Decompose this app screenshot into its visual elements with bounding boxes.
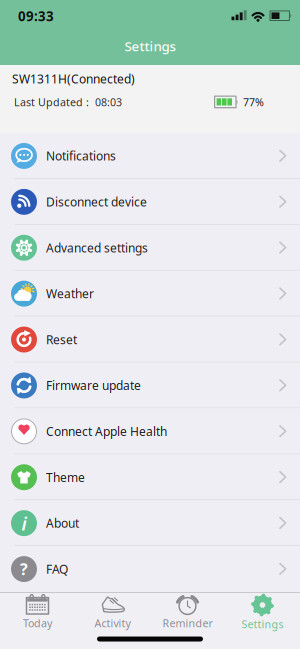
staticText: Reset	[46, 332, 77, 347]
staticText: About	[46, 515, 79, 531]
button[interactable]: Reminder	[150, 594, 225, 634]
button[interactable]: i	[0, 500, 300, 546]
staticText: Theme	[46, 469, 85, 485]
button[interactable]: Reset	[0, 317, 300, 362]
staticText: Firmware update	[46, 377, 141, 393]
staticText: Settings	[124, 37, 175, 55]
button[interactable]: Weather	[0, 271, 300, 317]
staticText: 77%	[243, 95, 264, 109]
staticText: 09:33	[18, 7, 54, 25]
button[interactable]: Notifications	[0, 133, 300, 179]
staticText: SW1311H(Connected)	[12, 71, 135, 87]
button[interactable]: Activity	[75, 594, 150, 634]
staticText: Activity	[94, 616, 130, 630]
staticText: Connect Apple Health	[46, 423, 167, 439]
button[interactable]: Advanced settings	[0, 225, 300, 271]
button[interactable]: Today	[0, 594, 75, 634]
staticText: Settings	[241, 617, 283, 631]
staticText: Today	[23, 616, 52, 630]
staticText: Last Updated : 08:03	[14, 95, 122, 109]
staticText: Weather	[46, 286, 94, 302]
staticText: Reminder	[162, 616, 212, 630]
button[interactable]: Settings	[225, 594, 300, 634]
button[interactable]: ?	[0, 546, 300, 592]
button[interactable]: Theme	[0, 454, 300, 500]
staticText: ?	[20, 558, 28, 580]
button[interactable]: Disconnect device	[0, 179, 300, 225]
button[interactable]: Connect Apple Health	[0, 408, 300, 454]
button[interactable]: Firmware update	[0, 362, 300, 408]
staticText: Notifications	[46, 148, 116, 164]
staticText: Disconnect device	[46, 194, 147, 210]
staticText: i	[21, 511, 26, 536]
staticText: Advanced settings	[46, 240, 148, 256]
staticText: FAQ	[46, 561, 68, 577]
